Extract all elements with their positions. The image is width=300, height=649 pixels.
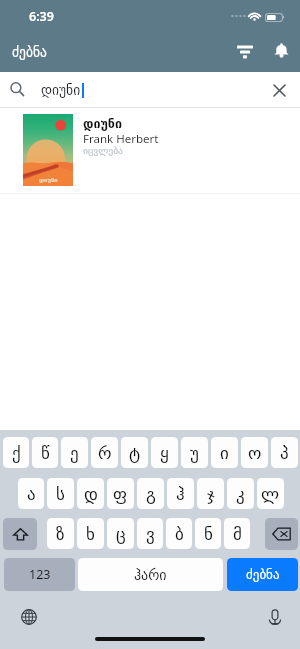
staticText: დიუნი xyxy=(41,82,81,98)
staticText: იცვლება xyxy=(83,145,123,156)
button[interactable]: პ xyxy=(271,437,298,468)
staticText: ძებნა xyxy=(12,44,47,60)
button[interactable]: ჯ xyxy=(197,478,224,509)
staticText: გ xyxy=(146,484,156,504)
button[interactable]: ტ xyxy=(121,437,148,468)
button[interactable]: Clear search xyxy=(266,77,292,103)
staticText: ი xyxy=(220,443,229,463)
staticText: წ xyxy=(41,443,50,463)
button[interactable]: ფ xyxy=(107,478,134,509)
staticText: 123 xyxy=(29,566,51,583)
staticText: ჰარი xyxy=(134,567,167,583)
staticText: ფ xyxy=(113,484,128,504)
staticText: ჰ xyxy=(176,484,185,504)
staticText: ს xyxy=(56,484,65,504)
staticText: მ xyxy=(233,524,242,544)
button[interactable]: ჰარი xyxy=(78,558,223,591)
staticText: ყ xyxy=(160,443,169,463)
button[interactable]: 123 xyxy=(4,558,75,591)
button[interactable]: წ xyxy=(32,437,58,468)
staticText: ქ xyxy=(12,443,21,463)
button[interactable]: გ xyxy=(137,478,164,509)
button[interactable]: ს xyxy=(47,478,74,509)
staticText: პ xyxy=(280,443,289,463)
button[interactable]: კ xyxy=(227,478,254,509)
button[interactable]: მ xyxy=(224,518,250,549)
button[interactable]: ნ xyxy=(195,518,221,549)
staticText: ვ xyxy=(146,524,155,544)
button[interactable]: ქ xyxy=(3,437,29,468)
button[interactable]: Dictate xyxy=(258,600,292,634)
staticText: 6:39 xyxy=(29,8,54,25)
staticText: დიუნი xyxy=(39,176,58,183)
button[interactable]: უ xyxy=(181,437,208,468)
button[interactable]: Shift xyxy=(3,518,37,550)
staticText: ტ xyxy=(129,443,141,463)
button[interactable]: ე xyxy=(61,437,88,468)
staticText: უ xyxy=(190,443,199,463)
button[interactable]: ვ xyxy=(137,518,163,549)
button[interactable]: ჰ xyxy=(167,478,194,509)
staticText: ე xyxy=(70,443,79,463)
button[interactable]: ხ xyxy=(77,518,104,549)
staticText: ჯ xyxy=(207,484,215,504)
button[interactable]: Filter xyxy=(226,31,264,69)
staticText: რ xyxy=(98,443,112,463)
button[interactable]: ყ xyxy=(151,437,178,468)
staticText: დ xyxy=(84,484,98,504)
button[interactable]: Backspace xyxy=(265,518,298,550)
button[interactable]: ა xyxy=(18,478,44,509)
staticText: Frank Herbert xyxy=(83,131,159,147)
staticText: ნ xyxy=(204,524,213,544)
button[interactable]: დ xyxy=(77,478,104,509)
staticText: დიუნი xyxy=(83,116,123,131)
button[interactable]: ო xyxy=(241,437,268,468)
button[interactable]: ი xyxy=(211,437,238,468)
button[interactable]: ლ xyxy=(257,478,284,509)
button[interactable]: ბ xyxy=(166,518,192,549)
button[interactable]: დიუნი xyxy=(0,108,300,193)
staticText: ო xyxy=(248,443,262,463)
staticText: ზ xyxy=(56,524,65,544)
staticText: ბ xyxy=(175,524,184,544)
button[interactable]: ზ xyxy=(47,518,74,549)
staticText: ლ xyxy=(261,484,280,504)
staticText: ც xyxy=(116,524,126,544)
staticText: ა xyxy=(27,484,36,504)
staticText: კ xyxy=(236,484,245,504)
button[interactable]: ძებნა xyxy=(227,558,298,591)
staticText: ხ xyxy=(86,524,95,544)
button[interactable]: Change keyboard xyxy=(12,600,46,634)
staticText: ძებნა xyxy=(246,567,280,582)
button[interactable]: რ xyxy=(91,437,118,468)
button[interactable]: ც xyxy=(107,518,134,549)
button[interactable]: Notifications xyxy=(262,31,300,69)
